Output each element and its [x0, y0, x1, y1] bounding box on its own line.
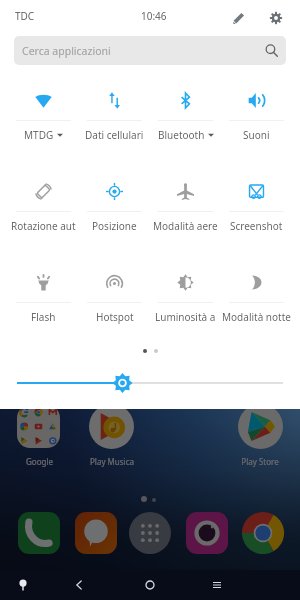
staticText: Suoni — [243, 128, 270, 142]
staticText: Cerca applicazioni — [22, 44, 111, 58]
staticText: Luminosità a — [155, 310, 216, 324]
staticText: Play Musica — [90, 456, 134, 467]
staticText: Hotspot — [96, 310, 134, 324]
button[interactable]: Modalità aere — [150, 176, 221, 267]
staticText: Flash — [31, 310, 56, 324]
staticText: Play Store — [241, 456, 279, 467]
button[interactable]: Brightness — [0, 373, 300, 393]
staticText: Modalità notte — [222, 310, 291, 324]
button[interactable]: Edit — [227, 6, 251, 30]
button[interactable]: Dati cellulari — [79, 85, 150, 176]
button[interactable]: Flash — [8, 267, 79, 358]
staticText: 10:46 — [141, 9, 167, 23]
button[interactable]: Hotspot — [79, 267, 150, 358]
button[interactable]: Recent apps — [204, 572, 230, 598]
button[interactable]: MTDG — [8, 85, 79, 176]
button[interactable]: Phone — [18, 512, 60, 554]
button[interactable]: Chrome — [241, 511, 285, 555]
staticText: Modalità aere — [153, 219, 218, 233]
button[interactable]: Rotazione aut — [8, 176, 79, 267]
staticText: Dati cellulari — [85, 128, 144, 142]
button[interactable]: Camera — [186, 512, 228, 554]
button[interactable]: Cerca applicazioni — [14, 36, 286, 65]
button[interactable]: Posizione — [79, 176, 150, 267]
button[interactable]: Play Musica — [89, 404, 134, 449]
staticText: Google — [26, 456, 53, 467]
button[interactable]: Hide keyboard — [10, 572, 36, 598]
staticText: Rotazione aut — [11, 219, 76, 233]
button[interactable]: Settings — [264, 6, 288, 30]
staticText: Bluetooth — [158, 128, 205, 142]
button[interactable]: Luminosità a — [150, 267, 221, 358]
button[interactable]: Suoni — [221, 85, 292, 176]
staticText: Screenshot — [230, 219, 283, 233]
button[interactable]: Google folder — [17, 405, 60, 448]
button[interactable]: Play Store — [238, 404, 283, 449]
staticText: MTDG — [24, 128, 54, 142]
button[interactable]: Modalità notte — [221, 267, 292, 358]
staticText: Posizione — [92, 219, 137, 233]
staticText: TDC — [15, 9, 35, 23]
button[interactable]: Messages — [75, 512, 117, 554]
button[interactable]: Home — [137, 572, 163, 598]
button[interactable]: Bluetooth — [150, 85, 221, 176]
button[interactable]: All apps — [129, 512, 171, 554]
button[interactable]: Screenshot — [221, 176, 292, 267]
button[interactable]: Back — [66, 572, 92, 598]
